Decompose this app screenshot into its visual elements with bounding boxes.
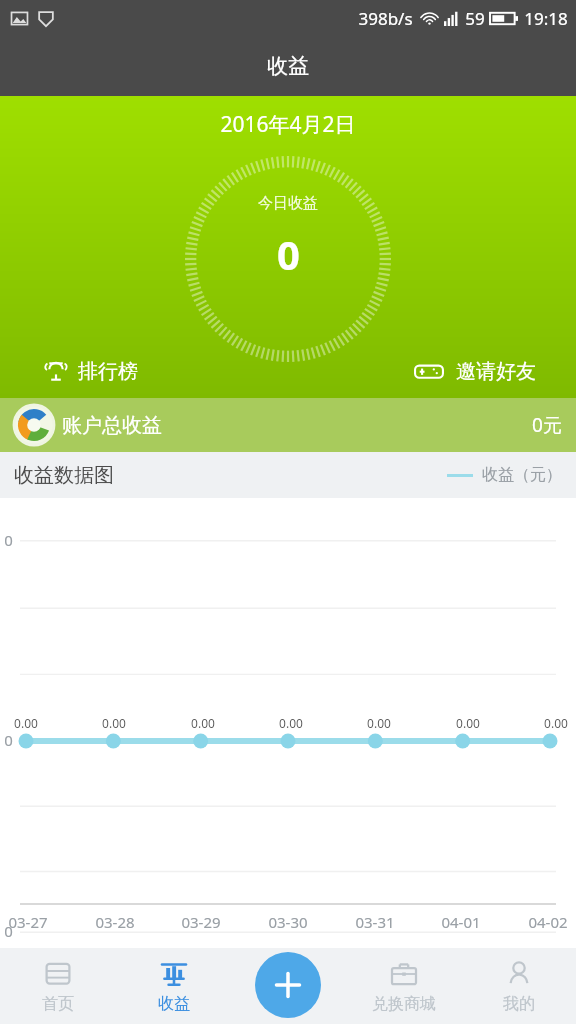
staticText: 59 (465, 7, 485, 30)
staticText: 排行榜 (78, 359, 138, 384)
button[interactable]: 首页 (0, 948, 116, 1024)
staticText: 账户总收益 (62, 413, 162, 438)
staticText: 我的 (503, 994, 535, 1014)
staticText: 19:18 (524, 7, 568, 30)
staticText: 0 (4, 530, 13, 550)
button[interactable]: 我的 (461, 948, 576, 1024)
staticText: 2016年4月2日 (220, 110, 356, 139)
button[interactable]: Add (255, 952, 321, 1018)
staticText: 收益数据图 (14, 463, 114, 488)
staticText: 0.00 (14, 715, 38, 731)
staticText: 0 (277, 227, 300, 281)
button[interactable]: 兑换商城 (346, 948, 461, 1024)
button[interactable]: 账户总收益 (0, 398, 576, 452)
staticText: 0.00 (367, 715, 391, 731)
staticText: 03-30 (268, 912, 308, 932)
staticText: 03-27 (8, 912, 48, 932)
staticText: 0 (4, 921, 13, 941)
staticText: 0.00 (191, 715, 215, 731)
staticText: 今日收益 (258, 194, 318, 213)
button[interactable]: 排行榜 (44, 359, 138, 384)
staticText: 0.00 (279, 715, 303, 731)
staticText: 0.00 (544, 715, 568, 731)
staticText: 0.00 (456, 715, 480, 731)
staticText: 04-02 (528, 912, 568, 932)
button[interactable]: 邀请好友 (414, 359, 536, 384)
staticText: 03-31 (355, 912, 395, 932)
staticText: 0 (4, 730, 13, 750)
staticText: 兑换商城 (372, 994, 436, 1014)
staticText: 收益 (267, 53, 309, 79)
button[interactable]: 收益 (116, 948, 231, 1024)
staticText: 收益（元） (482, 465, 562, 485)
staticText: 04-01 (441, 912, 481, 932)
staticText: 03-29 (181, 912, 221, 932)
staticText: 03-28 (95, 912, 135, 932)
staticText: 398b/s (358, 7, 413, 30)
staticText: 邀请好友 (456, 359, 536, 384)
staticText: 首页 (42, 994, 74, 1014)
staticText: 收益 (158, 994, 190, 1014)
staticText: 0.00 (102, 715, 126, 731)
staticText: 0元 (532, 412, 562, 438)
